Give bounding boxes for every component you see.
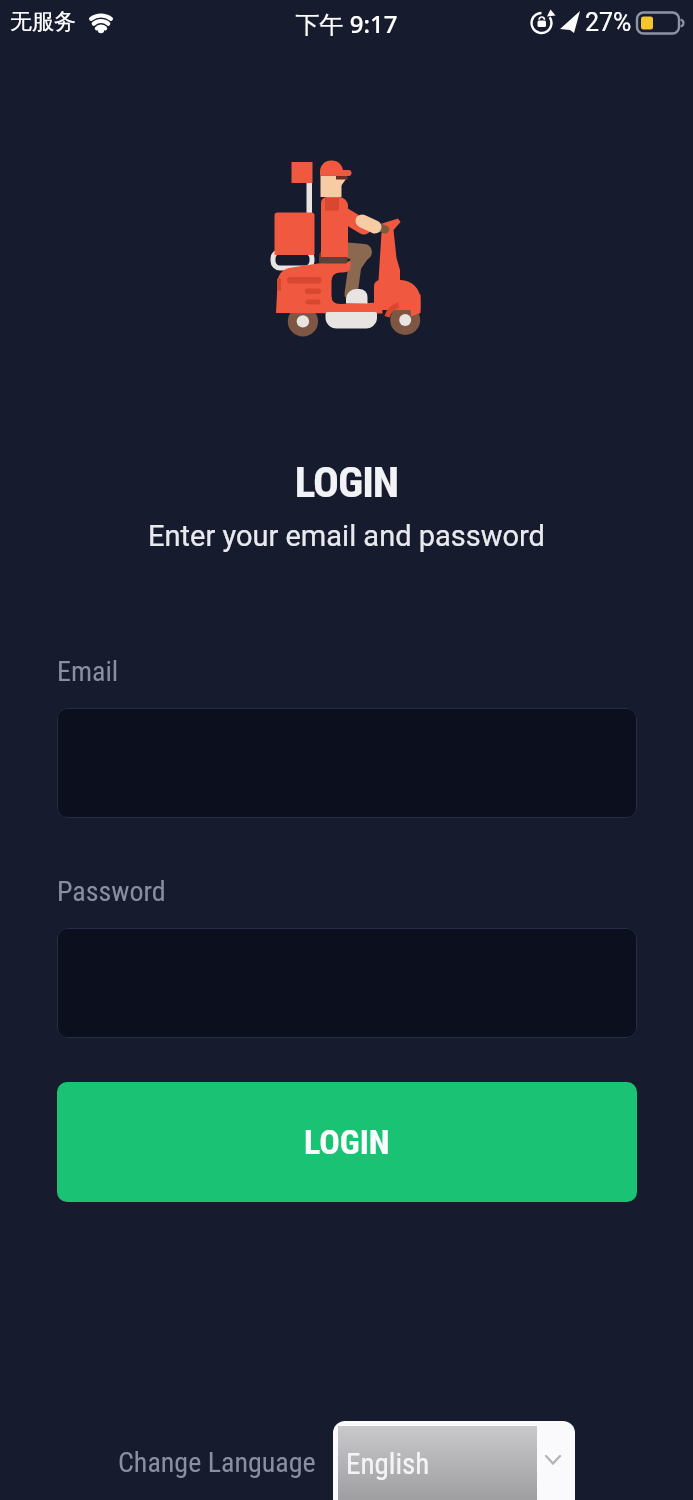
staticText: Password (57, 875, 166, 908)
staticText: LOGIN (304, 1122, 390, 1162)
staticText: 无服务 (10, 8, 76, 36)
staticText: 下午 9:17 (0, 7, 693, 40)
staticText: Enter your email and password (0, 519, 693, 553)
staticText: 27% (585, 8, 632, 37)
button[interactable] (57, 708, 637, 818)
staticText: English (346, 1447, 430, 1481)
staticText: Email (57, 655, 119, 688)
button[interactable]: LOGIN (57, 1082, 637, 1202)
button[interactable] (57, 928, 637, 1038)
staticText: LOGIN (0, 457, 693, 507)
staticText: Change Language (118, 1446, 316, 1479)
button[interactable]: English (333, 1421, 575, 1500)
